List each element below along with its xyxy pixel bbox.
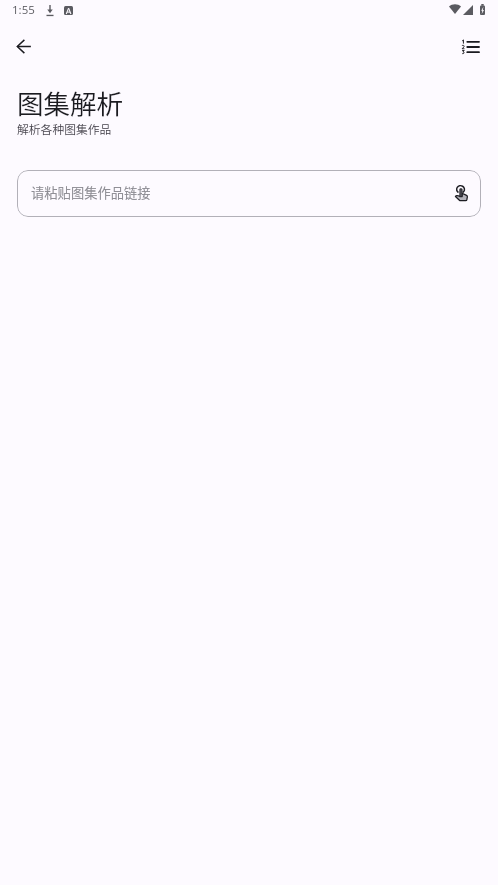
staticText: 1:55 bbox=[12, 2, 35, 18]
button[interactable]: History bbox=[450, 27, 490, 67]
button[interactable]: Paste link bbox=[444, 175, 478, 209]
button[interactable]: Back bbox=[4, 26, 44, 66]
staticText: 图集解析 bbox=[17, 83, 123, 121]
staticText: 解析各种图集作品 bbox=[17, 120, 112, 137]
staticText: 请粘贴图集作品链接 bbox=[31, 183, 151, 202]
button[interactable]: 请粘贴图集作品链接 bbox=[17, 170, 481, 217]
